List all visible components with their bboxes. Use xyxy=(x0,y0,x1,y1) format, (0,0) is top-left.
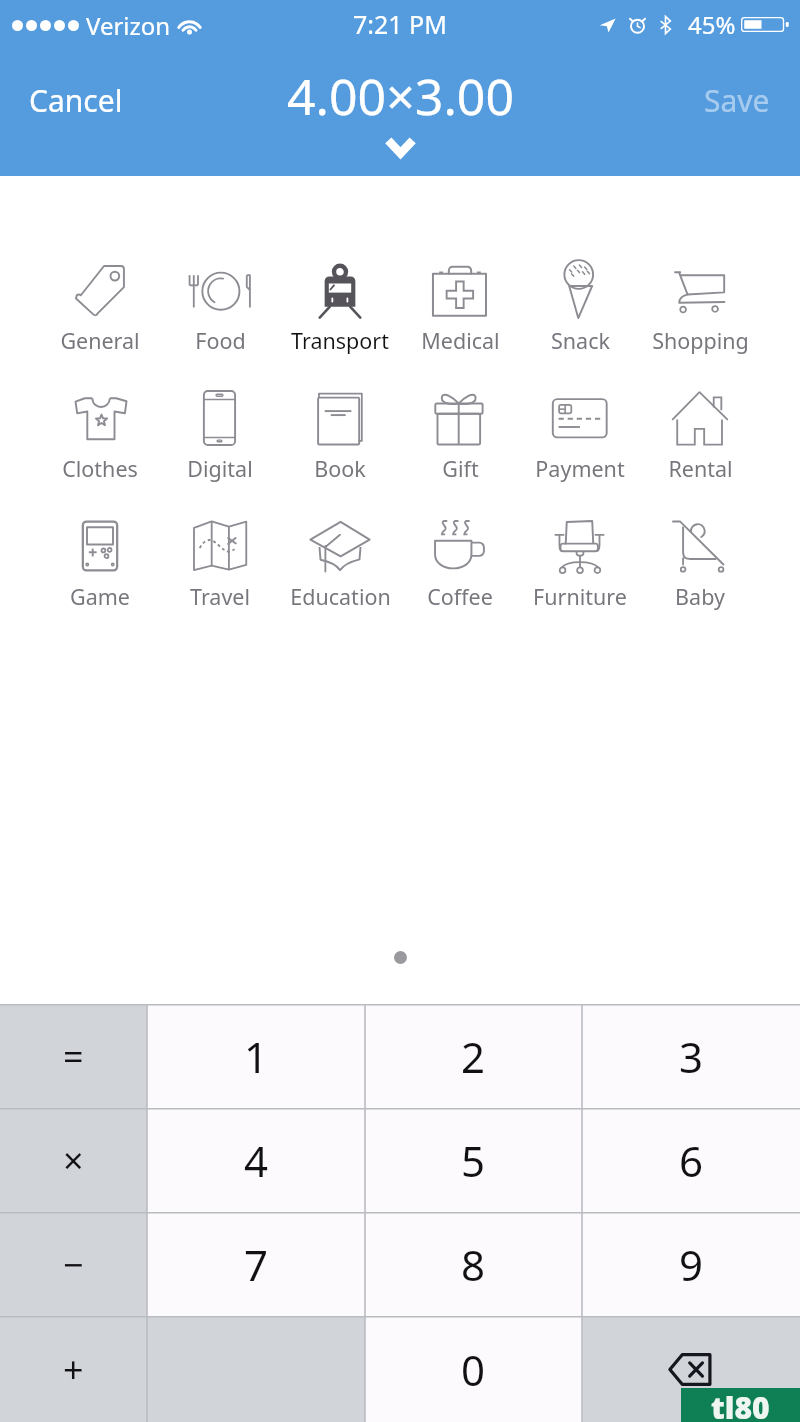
staticText: Digital xyxy=(187,454,253,483)
staticText: Payment xyxy=(535,454,625,483)
button[interactable]: Game xyxy=(40,508,160,636)
staticText: 5 xyxy=(461,1132,486,1189)
staticText: 8 xyxy=(461,1236,486,1293)
button[interactable] xyxy=(147,1316,365,1422)
staticText: General xyxy=(60,326,140,355)
staticText: + xyxy=(63,1345,84,1394)
staticText: Cancel xyxy=(29,80,123,121)
button[interactable]: 6 xyxy=(582,1108,800,1212)
staticText: tl80 xyxy=(711,1387,770,1421)
button[interactable]: Medical xyxy=(400,252,520,380)
staticText: 2 xyxy=(461,1028,486,1085)
button[interactable]: Travel xyxy=(160,508,280,636)
staticText: 0 xyxy=(461,1341,486,1398)
button[interactable]: 8 xyxy=(365,1212,582,1316)
staticText: 1 xyxy=(244,1028,269,1085)
staticText: Book xyxy=(314,454,366,483)
button[interactable]: Transport xyxy=(280,252,400,380)
staticText: Save xyxy=(704,80,770,121)
button[interactable]: Digital xyxy=(160,380,280,508)
button[interactable]: 9 xyxy=(582,1212,800,1316)
staticText: − xyxy=(63,1240,84,1289)
staticText: 4.00×3.00 xyxy=(287,62,514,130)
button[interactable]: Gift xyxy=(400,380,520,508)
staticText: Medical xyxy=(421,326,500,355)
button[interactable]: 5 xyxy=(365,1108,582,1212)
staticText: Game xyxy=(70,582,130,611)
button[interactable]: Snack xyxy=(520,252,640,380)
button[interactable]: Rental xyxy=(640,380,760,508)
staticText: 6 xyxy=(679,1132,704,1189)
button[interactable]: 1 xyxy=(147,1004,365,1108)
staticText: Transport xyxy=(291,326,389,355)
button[interactable]: 2 xyxy=(365,1004,582,1108)
button[interactable]: 3 xyxy=(582,1004,800,1108)
staticText: × xyxy=(63,1136,84,1185)
button[interactable]: + xyxy=(0,1316,147,1422)
staticText: Gift xyxy=(442,454,479,483)
button[interactable]: Furniture xyxy=(520,508,640,636)
button[interactable]: Clothes xyxy=(40,380,160,508)
staticText: Travel xyxy=(190,582,250,611)
button[interactable]: Backspace xyxy=(582,1316,800,1422)
button[interactable]: Book xyxy=(280,380,400,508)
button[interactable]: Food xyxy=(160,252,280,380)
staticText: Food xyxy=(195,326,246,355)
button[interactable]: Payment xyxy=(520,380,640,508)
staticText: 7 xyxy=(244,1236,269,1293)
staticText: Verizon xyxy=(86,9,171,42)
button[interactable]: 7 xyxy=(147,1212,365,1316)
staticText: Clothes xyxy=(62,454,138,483)
staticText: 3 xyxy=(679,1028,704,1085)
button[interactable]: × xyxy=(0,1108,147,1212)
button[interactable]: General xyxy=(40,252,160,380)
staticText: Rental xyxy=(668,454,733,483)
button[interactable]: = xyxy=(0,1004,147,1108)
button[interactable]: 0 xyxy=(365,1316,582,1422)
staticText: Baby xyxy=(675,582,725,611)
staticText: = xyxy=(63,1032,84,1081)
button[interactable]: Coffee xyxy=(400,508,520,636)
staticText: 9 xyxy=(679,1236,704,1293)
staticText: 7:21 PM xyxy=(353,7,447,41)
staticText: Shopping xyxy=(652,326,749,355)
button[interactable]: Education xyxy=(280,508,400,636)
staticText: 45% xyxy=(688,8,736,41)
button[interactable]: Shopping xyxy=(640,252,760,380)
button[interactable]: 4.00×3.00, expand amount xyxy=(240,62,560,158)
staticText: Furniture xyxy=(533,582,627,611)
button[interactable]: − xyxy=(0,1212,147,1316)
staticText: Education xyxy=(290,582,391,611)
staticText: Snack xyxy=(551,326,610,355)
staticText: 4 xyxy=(244,1132,269,1189)
staticText: Coffee xyxy=(427,582,493,611)
button[interactable]: Cancel xyxy=(0,63,150,137)
button[interactable]: Baby xyxy=(640,508,760,636)
button[interactable]: 4 xyxy=(147,1108,365,1212)
button[interactable]: Save xyxy=(670,63,800,137)
